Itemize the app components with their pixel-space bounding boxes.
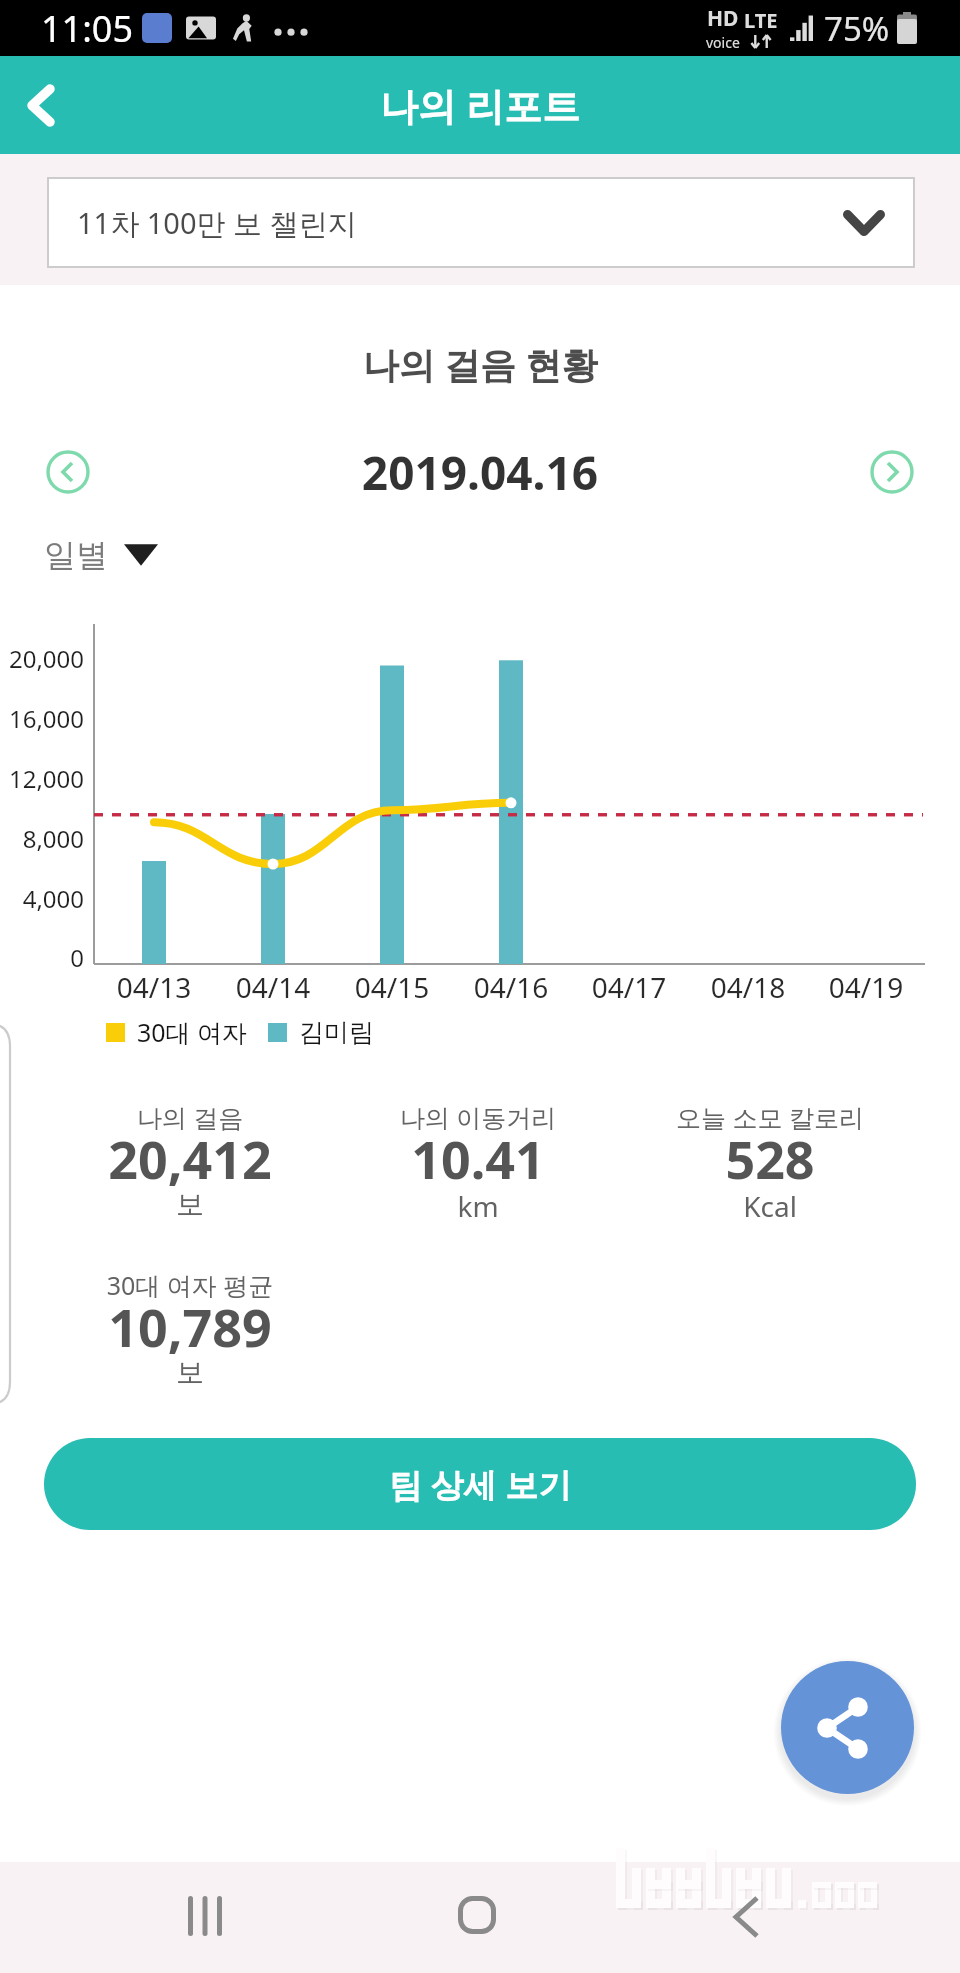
staticText: 11:05 [41, 4, 134, 53]
staticText: 04/18 [678, 968, 818, 1006]
staticText: voice [706, 33, 740, 52]
button[interactable]: 11차 100만 보 챌린지 [47, 177, 915, 268]
button[interactable]: 팀 상세 보기 [44, 1438, 916, 1530]
staticText: 8,000 [0, 822, 84, 855]
staticText: 10.41 [278, 1123, 678, 1194]
staticText: LTE [744, 7, 778, 34]
staticText: km [278, 1187, 678, 1225]
staticText: 나의 리포트 [380, 79, 580, 131]
staticText: 오늘 소모 칼로리 [570, 1100, 960, 1134]
button[interactable]: Next date [860, 440, 924, 504]
button[interactable]: 일별 [44, 522, 158, 588]
staticText: 16,000 [0, 702, 84, 735]
staticText: 보 [0, 1355, 390, 1390]
staticText: 11차 100만 보 챌린지 [77, 203, 843, 243]
staticText: 04/15 [322, 968, 462, 1006]
staticText: 12,000 [0, 762, 84, 795]
staticText: 2019.04.16 [100, 441, 860, 504]
staticText: 나의 걸음 현황 [0, 340, 960, 389]
staticText: Kcal [570, 1187, 960, 1225]
staticText: 팀 상세 보기 [389, 1462, 572, 1507]
staticText: 30대 여자 [137, 1015, 248, 1049]
button[interactable]: Recent apps [160, 1868, 256, 1964]
button[interactable]: Previous date [36, 440, 100, 504]
staticText: HD [707, 4, 739, 33]
staticText: 나의 걸음 [0, 1100, 390, 1134]
staticText: 04/19 [796, 968, 936, 1006]
staticText: 보 [0, 1187, 390, 1222]
button[interactable]: Back [698, 1869, 794, 1965]
button[interactable]: Home [429, 1867, 525, 1963]
staticText: 20,000 [0, 642, 84, 675]
staticText: 20,412 [0, 1123, 390, 1194]
button[interactable]: Back [0, 64, 82, 146]
staticText: 04/13 [84, 968, 224, 1006]
button[interactable]: Share [781, 1661, 914, 1794]
staticText: 04/16 [441, 968, 581, 1006]
staticText: 04/14 [203, 968, 343, 1006]
staticText: 528 [570, 1123, 960, 1194]
staticText: 일별 [44, 535, 108, 575]
staticText: 4,000 [0, 882, 84, 915]
staticText: 10,789 [0, 1291, 390, 1362]
staticText: 0 [0, 941, 84, 974]
staticText: 나의 이동거리 [278, 1100, 678, 1134]
staticText: 김미림 [299, 1017, 374, 1048]
staticText: 04/17 [559, 968, 699, 1006]
staticText: 30대 여자 평균 [0, 1268, 390, 1302]
staticText: 75% [824, 6, 890, 51]
